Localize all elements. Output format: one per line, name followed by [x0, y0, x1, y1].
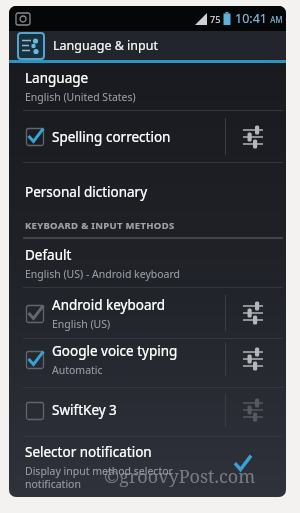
staticText: Android keyboard: [52, 296, 166, 314]
button[interactable]: Language: [9, 63, 286, 110]
staticText: Personal dictionary: [25, 183, 148, 201]
button[interactable]: [226, 335, 286, 383]
staticText: English (US): [52, 317, 111, 331]
staticText: 75: [210, 13, 221, 25]
button[interactable]: Personal dictionary: [9, 163, 286, 213]
staticText: ©groovyPost.com: [104, 464, 256, 489]
staticText: Spelling correction: [52, 128, 171, 146]
staticText: English (United States): [25, 90, 136, 104]
button[interactable]: Language & input: [9, 31, 286, 60]
staticText: Automatic: [52, 363, 103, 377]
button[interactable]: [226, 386, 286, 434]
staticText: Google voice typing: [52, 342, 178, 360]
button[interactable]: [226, 111, 286, 162]
button[interactable]: Selector notification: [9, 437, 286, 497]
staticText: 10:41 AM: [235, 10, 283, 27]
button[interactable]: [226, 288, 286, 338]
staticText: English (US) - Android keyboard: [25, 267, 181, 281]
staticText: Default: [25, 246, 72, 264]
button[interactable]: Default: [9, 239, 286, 287]
button[interactable]: Google voice typing: [9, 339, 286, 387]
staticText: Language & input: [53, 37, 158, 54]
staticText: Display input method selector notificati…: [25, 464, 173, 491]
staticText: KEYBOARD & INPUT METHODS: [25, 219, 175, 232]
button[interactable]: Spelling correction: [9, 111, 286, 162]
staticText: Language: [25, 69, 89, 87]
staticText: Selector notification: [25, 443, 152, 461]
button[interactable]: SwiftKey 3: [9, 388, 286, 436]
staticText: SwiftKey 3: [52, 401, 117, 419]
button[interactable]: Android keyboard: [9, 288, 286, 338]
